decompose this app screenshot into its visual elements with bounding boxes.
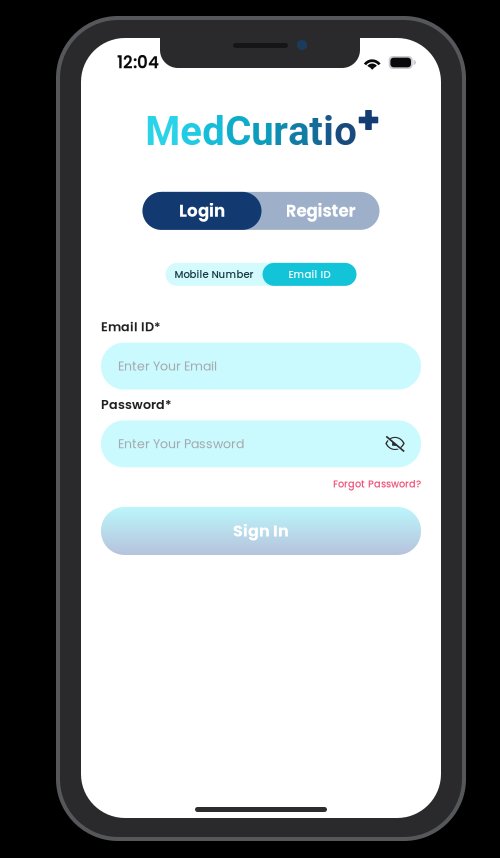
- staticText: r: [273, 108, 288, 155]
- staticText: e: [180, 108, 202, 155]
- staticText: Password*: [101, 396, 172, 413]
- button[interactable]: Login: [142, 192, 261, 230]
- staticText: Enter Your Password: [118, 435, 244, 453]
- staticText: Sign In: [233, 520, 289, 542]
- staticText: M: [145, 108, 180, 155]
- staticText: Email ID*: [101, 318, 161, 336]
- staticText: u: [251, 108, 273, 155]
- staticText: d: [202, 108, 225, 155]
- staticText: C: [225, 108, 251, 155]
- staticText: 12:04: [117, 51, 159, 74]
- staticText: Email ID: [288, 267, 330, 281]
- staticText: Register: [285, 199, 355, 222]
- button[interactable]: Sign In: [101, 507, 421, 555]
- button[interactable]: Mobile Number: [165, 263, 262, 286]
- staticText: a: [288, 108, 309, 155]
- button[interactable]: Show password: [385, 436, 405, 452]
- staticText: Login: [179, 199, 225, 222]
- staticText: Enter Your Email: [118, 357, 217, 375]
- button[interactable]: Forgot Password?: [333, 477, 421, 491]
- staticText: Mobile Number: [174, 267, 253, 281]
- button[interactable]: Email ID: [262, 263, 356, 286]
- staticText: i: [323, 108, 334, 155]
- button[interactable]: Register: [261, 192, 379, 230]
- staticText: Forgot Password?: [333, 477, 421, 491]
- staticText: o: [334, 108, 357, 155]
- staticText: t: [309, 108, 323, 155]
